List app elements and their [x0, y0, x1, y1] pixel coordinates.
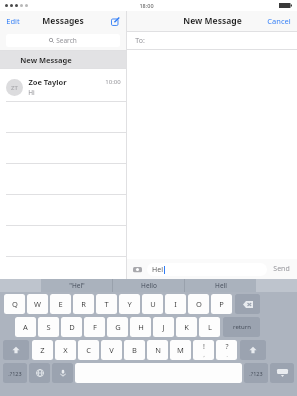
- button[interactable]: T: [96, 294, 117, 314]
- staticText: Search: [56, 36, 77, 45]
- staticText: E: [58, 299, 63, 309]
- button[interactable]: Y: [119, 294, 140, 314]
- button[interactable]: Z: [32, 340, 53, 360]
- button[interactable]: Compose new message: [105, 14, 126, 29]
- button[interactable]: "Hel": [41, 279, 112, 292]
- staticText: 10:00: [105, 78, 121, 86]
- button[interactable]: H: [130, 317, 151, 337]
- button[interactable]: !: [193, 340, 214, 360]
- button[interactable]: Send: [271, 264, 292, 274]
- staticText: !: [203, 342, 205, 352]
- staticText: Send: [273, 264, 290, 274]
- staticText: Hel: [152, 265, 163, 275]
- button[interactable]: N: [147, 340, 168, 360]
- button[interactable]: V: [101, 340, 122, 360]
- staticText: ZT: [11, 84, 18, 92]
- staticText: P: [219, 299, 224, 309]
- staticText: ?: [225, 342, 229, 352]
- staticText: N: [155, 345, 161, 355]
- staticText: G: [115, 322, 121, 332]
- staticText: return: [233, 323, 251, 331]
- staticText: Q: [12, 299, 18, 309]
- staticText: "Hel": [69, 281, 85, 290]
- staticText: Hell: [215, 281, 227, 290]
- staticText: Cancel: [267, 16, 291, 26]
- button[interactable]: I: [165, 294, 186, 314]
- button[interactable]: X: [55, 340, 76, 360]
- button[interactable]: .?123: [244, 363, 268, 383]
- button[interactable]: S: [38, 317, 59, 337]
- staticText: Z: [40, 345, 45, 355]
- button[interactable]: ?: [216, 340, 237, 360]
- button[interactable]: return: [223, 317, 260, 337]
- staticText: .?123: [8, 370, 22, 377]
- button[interactable]: L: [199, 317, 220, 337]
- button[interactable]: Hel: [147, 263, 267, 276]
- staticText: B: [132, 345, 137, 355]
- button[interactable]: Backspace: [235, 294, 260, 314]
- staticText: H: [138, 322, 144, 332]
- button[interactable]: D: [61, 317, 82, 337]
- staticText: M: [177, 345, 184, 355]
- staticText: New Message: [20, 55, 72, 65]
- staticText: A: [23, 322, 28, 332]
- button[interactable]: B: [124, 340, 145, 360]
- staticText: L: [208, 322, 212, 332]
- button[interactable]: Camera: [132, 264, 143, 275]
- staticText: Messages: [42, 15, 84, 27]
- staticText: R: [81, 299, 86, 309]
- button[interactable]: Hide keyboard: [270, 363, 294, 383]
- button[interactable]: W: [27, 294, 48, 314]
- button[interactable]: To:: [127, 32, 297, 49]
- button[interactable]: Dictation: [52, 363, 73, 383]
- button[interactable]: E: [50, 294, 71, 314]
- button[interactable]: Hell: [185, 279, 256, 292]
- button[interactable]: F: [84, 317, 105, 337]
- button[interactable]: Edit: [0, 13, 26, 29]
- button[interactable]: Shift: [3, 340, 29, 360]
- button[interactable]: M: [170, 340, 191, 360]
- staticText: O: [196, 299, 202, 309]
- staticText: S: [46, 322, 51, 332]
- staticText: To:: [135, 36, 145, 46]
- staticText: X: [63, 345, 68, 355]
- button[interactable]: Switch keyboard: [29, 363, 50, 383]
- button[interactable]: A: [15, 317, 36, 337]
- staticText: Y: [127, 299, 132, 309]
- staticText: Edit: [6, 16, 20, 26]
- staticText: U: [150, 299, 156, 309]
- staticText: Zoe Taylor: [28, 77, 67, 87]
- button[interactable]: Cancel: [261, 13, 297, 29]
- staticText: 18:00: [139, 2, 154, 9]
- button[interactable]: G: [107, 317, 128, 337]
- button[interactable]: O: [188, 294, 209, 314]
- button[interactable]: J: [153, 317, 174, 337]
- button[interactable]: C: [78, 340, 99, 360]
- staticText: W: [34, 299, 41, 309]
- button[interactable]: K: [176, 317, 197, 337]
- button[interactable]: U: [142, 294, 163, 314]
- button[interactable]: ZT: [0, 73, 126, 101]
- button[interactable]: New Message: [0, 51, 126, 68]
- staticText: .?123: [249, 370, 263, 377]
- button[interactable]: Hello: [113, 279, 184, 292]
- staticText: D: [69, 322, 75, 332]
- button[interactable]: .?123: [3, 363, 27, 383]
- button[interactable]: R: [73, 294, 94, 314]
- button[interactable]: P: [211, 294, 232, 314]
- staticText: C: [86, 345, 91, 355]
- button[interactable]: Shift: [240, 340, 266, 360]
- staticText: K: [184, 322, 189, 332]
- button[interactable]: Q: [4, 294, 25, 314]
- staticText: Hello: [141, 281, 157, 290]
- button[interactable]: Search: [6, 34, 120, 47]
- staticText: I: [174, 299, 177, 309]
- staticText: T: [104, 299, 109, 309]
- staticText: F: [93, 322, 97, 332]
- staticText: V: [109, 345, 114, 355]
- staticText: J: [162, 322, 165, 332]
- staticText: New Message: [183, 15, 242, 27]
- staticText: Hi: [28, 88, 35, 97]
- staticText: .: [226, 352, 228, 358]
